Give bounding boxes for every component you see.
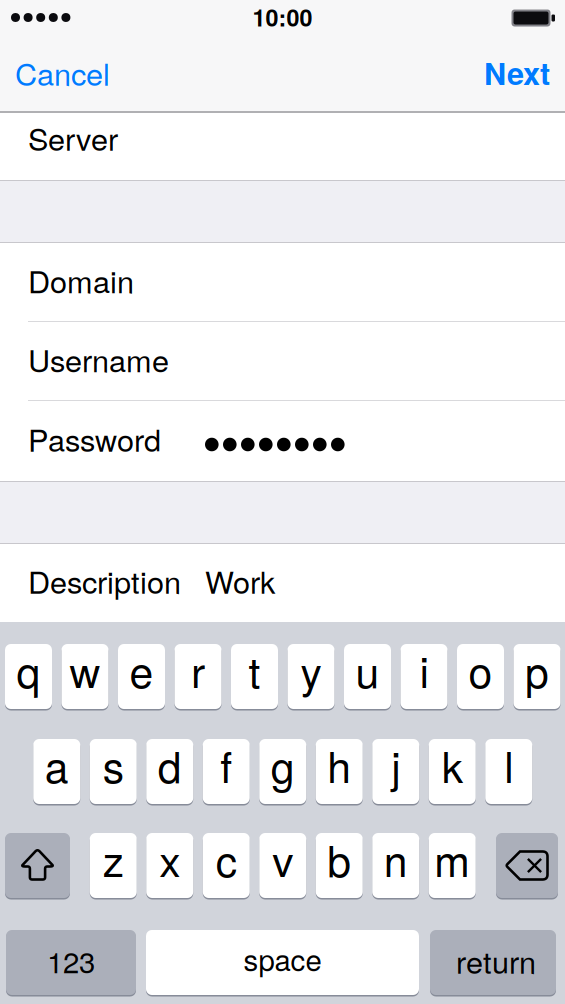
button[interactable]: b [316, 833, 363, 898]
staticText: j [391, 734, 400, 795]
staticText: i [419, 639, 428, 700]
staticText: 10:00 [252, 0, 312, 34]
button[interactable]: h [316, 739, 363, 804]
staticText: Password [28, 416, 161, 460]
staticText: x [159, 828, 180, 889]
button[interactable]: Username [0, 322, 565, 401]
staticText: 123 [47, 939, 95, 981]
button[interactable]: r [174, 644, 221, 709]
button[interactable]: f [203, 739, 250, 804]
button[interactable]: z [90, 833, 137, 898]
button[interactable]: Server [0, 113, 565, 180]
button[interactable]: Description [0, 544, 565, 622]
staticText: space [243, 937, 321, 979]
staticText: p [525, 639, 549, 700]
staticText: Domain [28, 258, 134, 302]
staticText: a [45, 734, 69, 795]
staticText: r [191, 639, 205, 700]
button[interactable]: i [400, 644, 447, 709]
button[interactable]: 123 [6, 930, 136, 995]
button[interactable]: g [259, 739, 306, 804]
staticText: Next [484, 50, 550, 94]
button[interactable]: d [146, 739, 193, 804]
staticText: l [504, 734, 513, 795]
button[interactable]: Password [0, 401, 565, 481]
button[interactable]: Shift [5, 833, 70, 898]
staticText: o [468, 639, 492, 700]
staticText: b [327, 828, 351, 889]
button[interactable]: Delete [496, 833, 558, 898]
button[interactable]: m [429, 833, 476, 898]
staticText: w [69, 639, 100, 700]
button[interactable]: j [372, 739, 419, 804]
staticText: y [300, 639, 321, 700]
staticText: s [103, 734, 124, 795]
button[interactable]: Cancel [0, 42, 126, 111]
button[interactable]: l [485, 739, 532, 804]
staticText: m [434, 828, 470, 889]
staticText: Work [205, 558, 275, 602]
staticText: c [216, 828, 237, 889]
button[interactable]: Next [468, 42, 565, 111]
button[interactable]: n [372, 833, 419, 898]
button[interactable]: e [118, 644, 165, 709]
staticText: v [272, 828, 293, 889]
button[interactable]: space [146, 930, 419, 995]
button[interactable]: u [344, 644, 391, 709]
staticText: Username [28, 337, 169, 381]
staticText: h [327, 734, 351, 795]
button[interactable]: return [430, 930, 556, 995]
button[interactable]: s [90, 739, 137, 804]
staticText: Server [28, 115, 118, 159]
button[interactable]: k [429, 739, 476, 804]
staticText: u [355, 639, 379, 700]
button[interactable]: c [203, 833, 250, 898]
staticText: z [103, 828, 124, 889]
staticText: return [456, 938, 536, 982]
button[interactable]: o [457, 644, 504, 709]
staticText: n [384, 828, 408, 889]
staticText: g [271, 734, 295, 795]
button[interactable]: q [5, 644, 52, 709]
button[interactable]: p [513, 644, 560, 709]
staticText: q [16, 639, 40, 700]
button[interactable]: a [33, 739, 80, 804]
button[interactable]: Domain [0, 243, 565, 322]
button[interactable]: v [259, 833, 306, 898]
button[interactable]: w [61, 644, 108, 709]
staticText: d [158, 734, 182, 795]
button[interactable]: x [146, 833, 193, 898]
button[interactable]: t [231, 644, 278, 709]
staticText: Cancel [15, 50, 110, 94]
staticText: k [442, 734, 463, 795]
staticText: f [220, 734, 232, 795]
staticText: t [248, 639, 260, 700]
staticText: Description [28, 558, 181, 602]
button[interactable]: y [287, 644, 334, 709]
staticText: e [129, 639, 153, 700]
